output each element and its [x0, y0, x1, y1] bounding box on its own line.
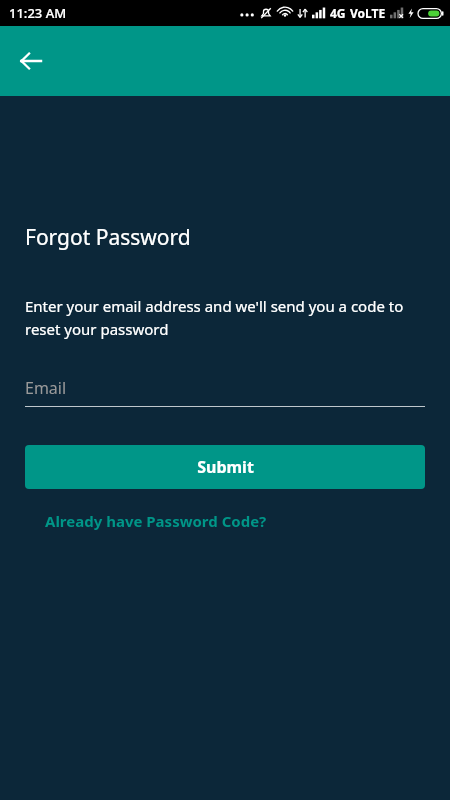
button[interactable]: Back — [13, 43, 49, 79]
staticText: 4G — [330, 5, 346, 21]
staticText: Email — [25, 377, 67, 399]
staticText: Submit — [197, 456, 254, 478]
staticText: VoLTE — [350, 5, 386, 21]
staticText: 11:23 AM — [9, 4, 67, 22]
button[interactable]: Submit — [25, 445, 425, 489]
staticText: Forgot Password — [25, 223, 191, 252]
staticText: Already have Password Code? — [45, 511, 267, 531]
button[interactable]: Email — [25, 377, 425, 407]
button[interactable]: Already have Password Code? — [45, 507, 267, 535]
staticText: Enter your email address and we'll send … — [25, 296, 425, 339]
